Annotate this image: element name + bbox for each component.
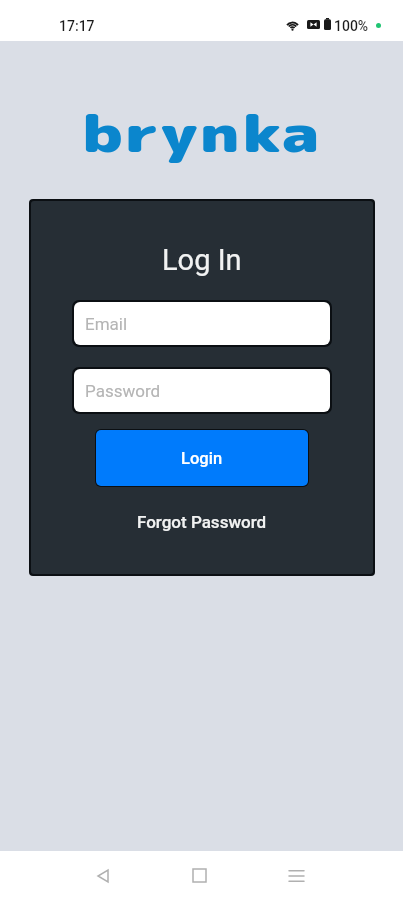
button[interactable]: Recent apps <box>276 851 316 900</box>
staticText: Email <box>85 314 128 334</box>
staticText: Login <box>181 449 223 468</box>
staticText: 100% <box>334 18 369 34</box>
button[interactable]: Login <box>95 429 309 487</box>
button[interactable]: Home <box>179 851 219 900</box>
staticText: Log In <box>162 243 242 277</box>
button[interactable]: Back <box>83 851 123 900</box>
staticText: brynka <box>81 97 321 168</box>
button[interactable]: Email <box>72 300 332 347</box>
button[interactable]: Forgot Password <box>129 508 275 536</box>
staticText: 17:17 <box>59 18 95 34</box>
staticText: Forgot Password <box>137 512 267 532</box>
staticText: Password <box>85 381 161 401</box>
button[interactable]: Password <box>72 367 332 414</box>
